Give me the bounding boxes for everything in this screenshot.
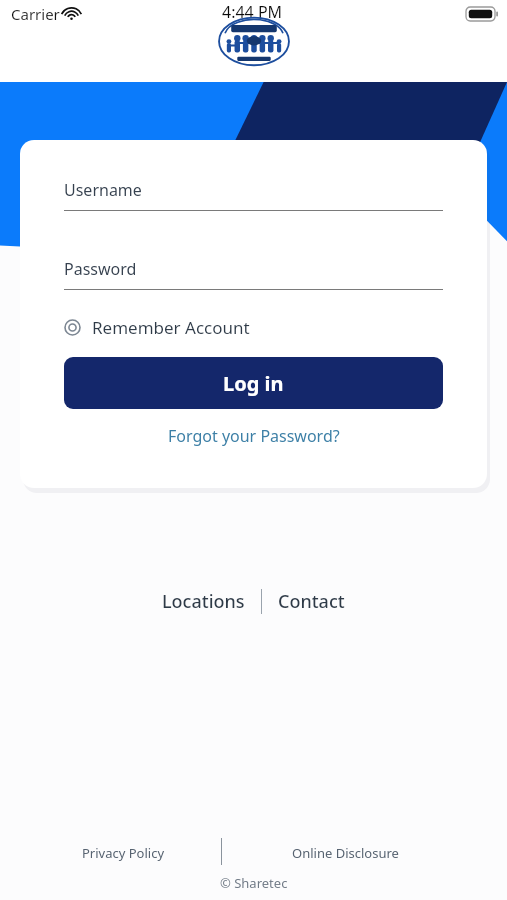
button[interactable]: Log in [64, 357, 443, 409]
staticText: © Sharetec [220, 874, 288, 892]
button[interactable]: Password [64, 258, 443, 290]
button[interactable]: Username [64, 179, 443, 211]
button[interactable]: Remember Account [64, 316, 443, 339]
button[interactable]: Contact [274, 586, 349, 617]
staticText: Password [64, 258, 137, 280]
staticText: Contact [278, 589, 345, 614]
staticText: Remember Account [92, 316, 250, 339]
button[interactable]: Locations [158, 586, 249, 617]
staticText: Log in [223, 370, 284, 397]
staticText: Username [64, 179, 142, 201]
button[interactable]: Privacy Policy [80, 842, 167, 864]
staticText: Privacy Policy [82, 844, 165, 862]
staticText: 4:44 PM [222, 1, 283, 23]
staticText: Locations [162, 589, 245, 614]
staticText: Forgot your Password? [168, 425, 340, 447]
button[interactable]: Forgot your Password? [20, 425, 487, 447]
button[interactable]: Online Disclosure [290, 842, 401, 864]
staticText: Carrier [11, 4, 60, 24]
staticText: Online Disclosure [292, 844, 399, 862]
